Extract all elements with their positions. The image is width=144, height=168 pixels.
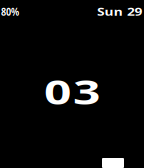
staticText: 80% bbox=[1, 2, 30, 21]
button[interactable]: Action bbox=[102, 158, 124, 168]
staticText: 03 bbox=[44, 59, 100, 123]
staticText: Sun 29 bbox=[94, 2, 142, 21]
